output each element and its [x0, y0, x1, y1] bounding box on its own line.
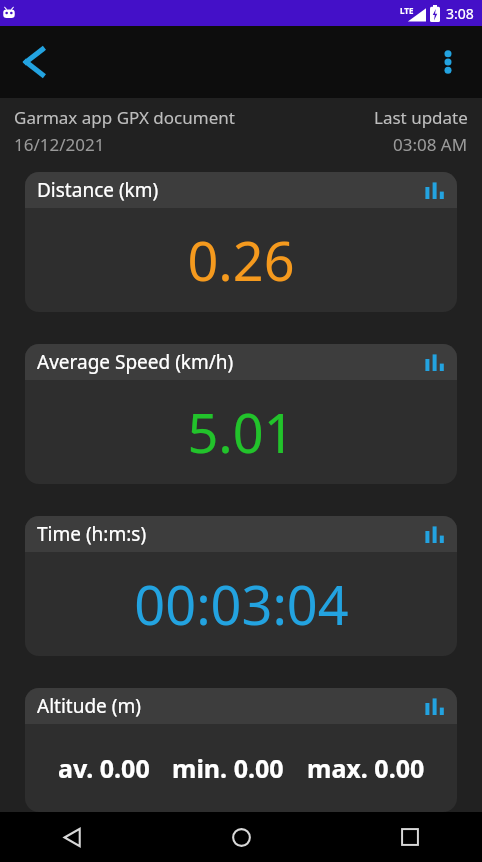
- button[interactable]: Back: [6, 34, 62, 90]
- button[interactable]: Home: [217, 813, 265, 861]
- staticText: min. 0.00: [172, 751, 284, 785]
- staticText: 00:03:04: [134, 567, 349, 641]
- button[interactable]: Time (h:m:s): [25, 516, 457, 656]
- staticText: av. 0.00: [58, 751, 150, 785]
- staticText: max. 0.00: [307, 751, 425, 785]
- staticText: Garmax app GPX document: [14, 106, 235, 129]
- staticText: 03:08 AM: [393, 133, 468, 156]
- button[interactable]: Average Speed (km/h): [25, 344, 457, 484]
- staticText: Last update: [374, 106, 468, 129]
- button[interactable]: Recent apps: [386, 813, 434, 861]
- button[interactable]: More options: [422, 36, 474, 88]
- staticText: 0.26: [187, 223, 295, 297]
- staticText: Time (h:m:s): [37, 521, 425, 547]
- staticText: 3:08: [446, 4, 474, 23]
- staticText: Distance (km): [37, 177, 425, 203]
- button[interactable]: Back: [48, 813, 96, 861]
- button[interactable]: Altitude (m): [25, 688, 457, 812]
- staticText: 16/12/2021: [14, 133, 105, 156]
- button[interactable]: Distance (km): [25, 172, 457, 312]
- staticText: LTE: [400, 5, 414, 16]
- staticText: 5.01: [187, 395, 295, 469]
- staticText: Average Speed (km/h): [37, 349, 425, 375]
- staticText: Altitude (m): [37, 693, 425, 719]
